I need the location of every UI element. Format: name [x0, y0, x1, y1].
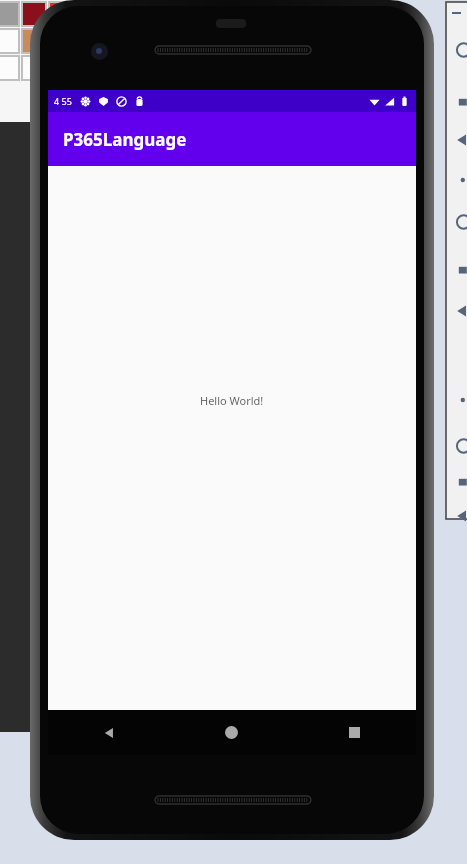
staticText: P365Language: [63, 128, 187, 151]
button[interactable]: [23, 3, 45, 25]
button[interactable]: [23, 57, 45, 79]
button[interactable]: P365Language: [48, 112, 416, 166]
button[interactable]: [50, 3, 72, 25]
button[interactable]: [23, 30, 45, 52]
staticText: Hello World!: [200, 393, 264, 408]
button[interactable]: Recents: [293, 710, 416, 755]
button[interactable]: Tool 10: [450, 508, 466, 524]
button[interactable]: Tool 8: [450, 438, 466, 454]
button[interactable]: Tool 3: [450, 172, 466, 188]
button[interactable]: Tool 2: [450, 132, 466, 148]
button[interactable]: Home: [170, 710, 293, 755]
button[interactable]: Tool 9: [450, 474, 466, 490]
button[interactable]: Tool 7: [450, 392, 466, 408]
button[interactable]: Tool 1: [450, 94, 466, 110]
staticText: 4 55: [54, 95, 72, 107]
button[interactable]: Tool 0: [450, 42, 466, 58]
button[interactable]: Tool 6: [450, 303, 466, 319]
button[interactable]: Tool 4: [450, 214, 466, 230]
button[interactable]: Back: [48, 710, 170, 755]
button[interactable]: Tool 5: [450, 262, 466, 278]
